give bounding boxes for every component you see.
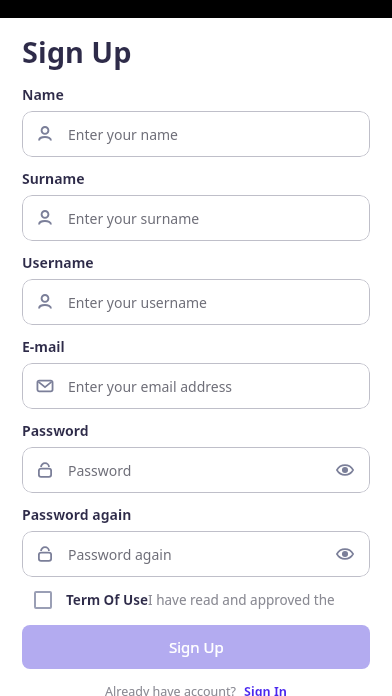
button[interactable]: Enter your surname	[22, 195, 370, 241]
button[interactable]: Show password	[334, 543, 356, 565]
staticText: Enter your name	[68, 125, 178, 144]
staticText: Password	[68, 461, 132, 480]
staticText: Sign Up	[22, 32, 132, 71]
staticText: Username	[22, 253, 94, 272]
staticText: Password again	[22, 505, 132, 524]
button[interactable]: Password again	[22, 531, 370, 577]
staticText: Enter your email address	[68, 377, 233, 396]
staticText: Enter your username	[68, 293, 208, 312]
staticText: Sign In	[244, 683, 287, 696]
staticText: Password again	[68, 545, 172, 564]
button[interactable]: Show password	[334, 459, 356, 481]
staticText: Sign Up	[169, 637, 224, 657]
button[interactable]: Enter your name	[22, 111, 370, 157]
staticText: Name	[22, 85, 64, 104]
button[interactable]: Enter your email address	[22, 363, 370, 409]
button[interactable]: Password	[22, 447, 370, 493]
button[interactable]: Enter your username	[22, 279, 370, 325]
button[interactable]: Term Of UseI have read and approved the	[34, 591, 370, 609]
staticText: Surname	[22, 169, 85, 188]
staticText: E-mail	[22, 337, 65, 356]
staticText: Enter your surname	[68, 209, 200, 228]
button[interactable]: Sign Up	[22, 625, 370, 669]
staticText: Password	[22, 421, 89, 440]
staticText: Already have account?	[105, 683, 236, 696]
button[interactable]: Sign In	[244, 683, 287, 696]
staticText: Term Of UseI have read and approved the	[66, 591, 335, 609]
